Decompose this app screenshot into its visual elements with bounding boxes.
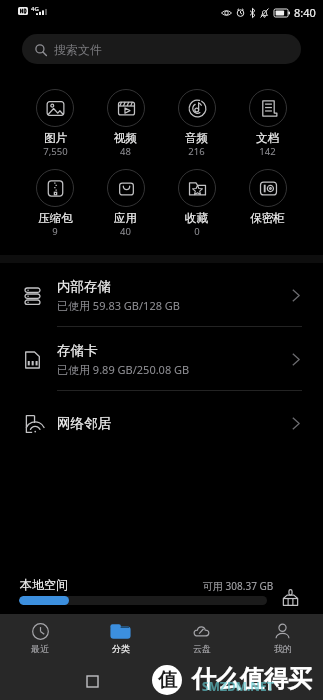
staticText: 压缩包: [38, 211, 73, 225]
button[interactable]: 图片: [20, 89, 90, 158]
staticText: 0: [194, 225, 200, 238]
button[interactable]: 云盘: [161, 614, 242, 662]
button[interactable]: 视频: [90, 89, 161, 158]
button[interactable]: 清理: [278, 585, 302, 609]
button[interactable]: 搜索文件: [22, 34, 301, 64]
staticText: 8:40: [294, 5, 316, 20]
staticText: 应用: [114, 211, 137, 225]
staticText: 视频: [114, 131, 137, 145]
staticText: 40: [120, 225, 131, 238]
staticText: 音频: [185, 131, 208, 145]
staticText: 本地空间: [20, 577, 68, 592]
button[interactable]: 存储卡: [0, 327, 323, 391]
staticText: 什么值得买: [192, 664, 312, 694]
staticText: 搜索文件: [54, 42, 102, 57]
staticText: 7,550: [43, 145, 68, 158]
button[interactable]: 音频: [161, 89, 232, 158]
staticText: 保密柜: [250, 211, 285, 225]
button[interactable]: 分类: [80, 614, 161, 662]
staticText: 网络邻居: [57, 415, 111, 432]
staticText: 分类: [112, 643, 130, 654]
button[interactable]: 保密柜: [232, 169, 303, 238]
button[interactable]: 最近: [0, 614, 80, 662]
staticText: 可用 308.37 GB: [203, 579, 274, 593]
staticText: 216: [188, 145, 205, 158]
staticText: 已使用 59.83 GB/128 GB: [57, 298, 180, 313]
staticText: 值: [158, 668, 177, 692]
button[interactable]: 网络邻居: [0, 391, 323, 455]
staticText: 9: [52, 225, 58, 238]
button[interactable]: 应用: [90, 169, 161, 238]
button[interactable]: 我的: [242, 614, 323, 662]
button[interactable]: Recents: [84, 673, 100, 689]
staticText: 文档: [256, 131, 279, 145]
staticText: 收藏: [185, 211, 208, 225]
staticText: 4G: [31, 5, 39, 13]
button[interactable]: 文档: [232, 89, 303, 158]
staticText: 云盘: [193, 643, 211, 654]
staticText: 已使用 9.89 GB/250.08 GB: [57, 362, 190, 377]
staticText: SMZDM.NET: [202, 678, 274, 694]
staticText: 142: [259, 145, 276, 158]
staticText: 最近: [31, 643, 49, 654]
button[interactable]: 内部存储: [0, 263, 323, 327]
button[interactable]: 压缩包: [20, 169, 90, 238]
staticText: 内部存储: [57, 278, 111, 295]
staticText: 48: [120, 145, 131, 158]
staticText: 我的: [274, 643, 292, 654]
staticText: 图片: [44, 131, 67, 145]
button[interactable]: 收藏: [161, 169, 232, 238]
staticText: 存储卡: [57, 342, 98, 359]
